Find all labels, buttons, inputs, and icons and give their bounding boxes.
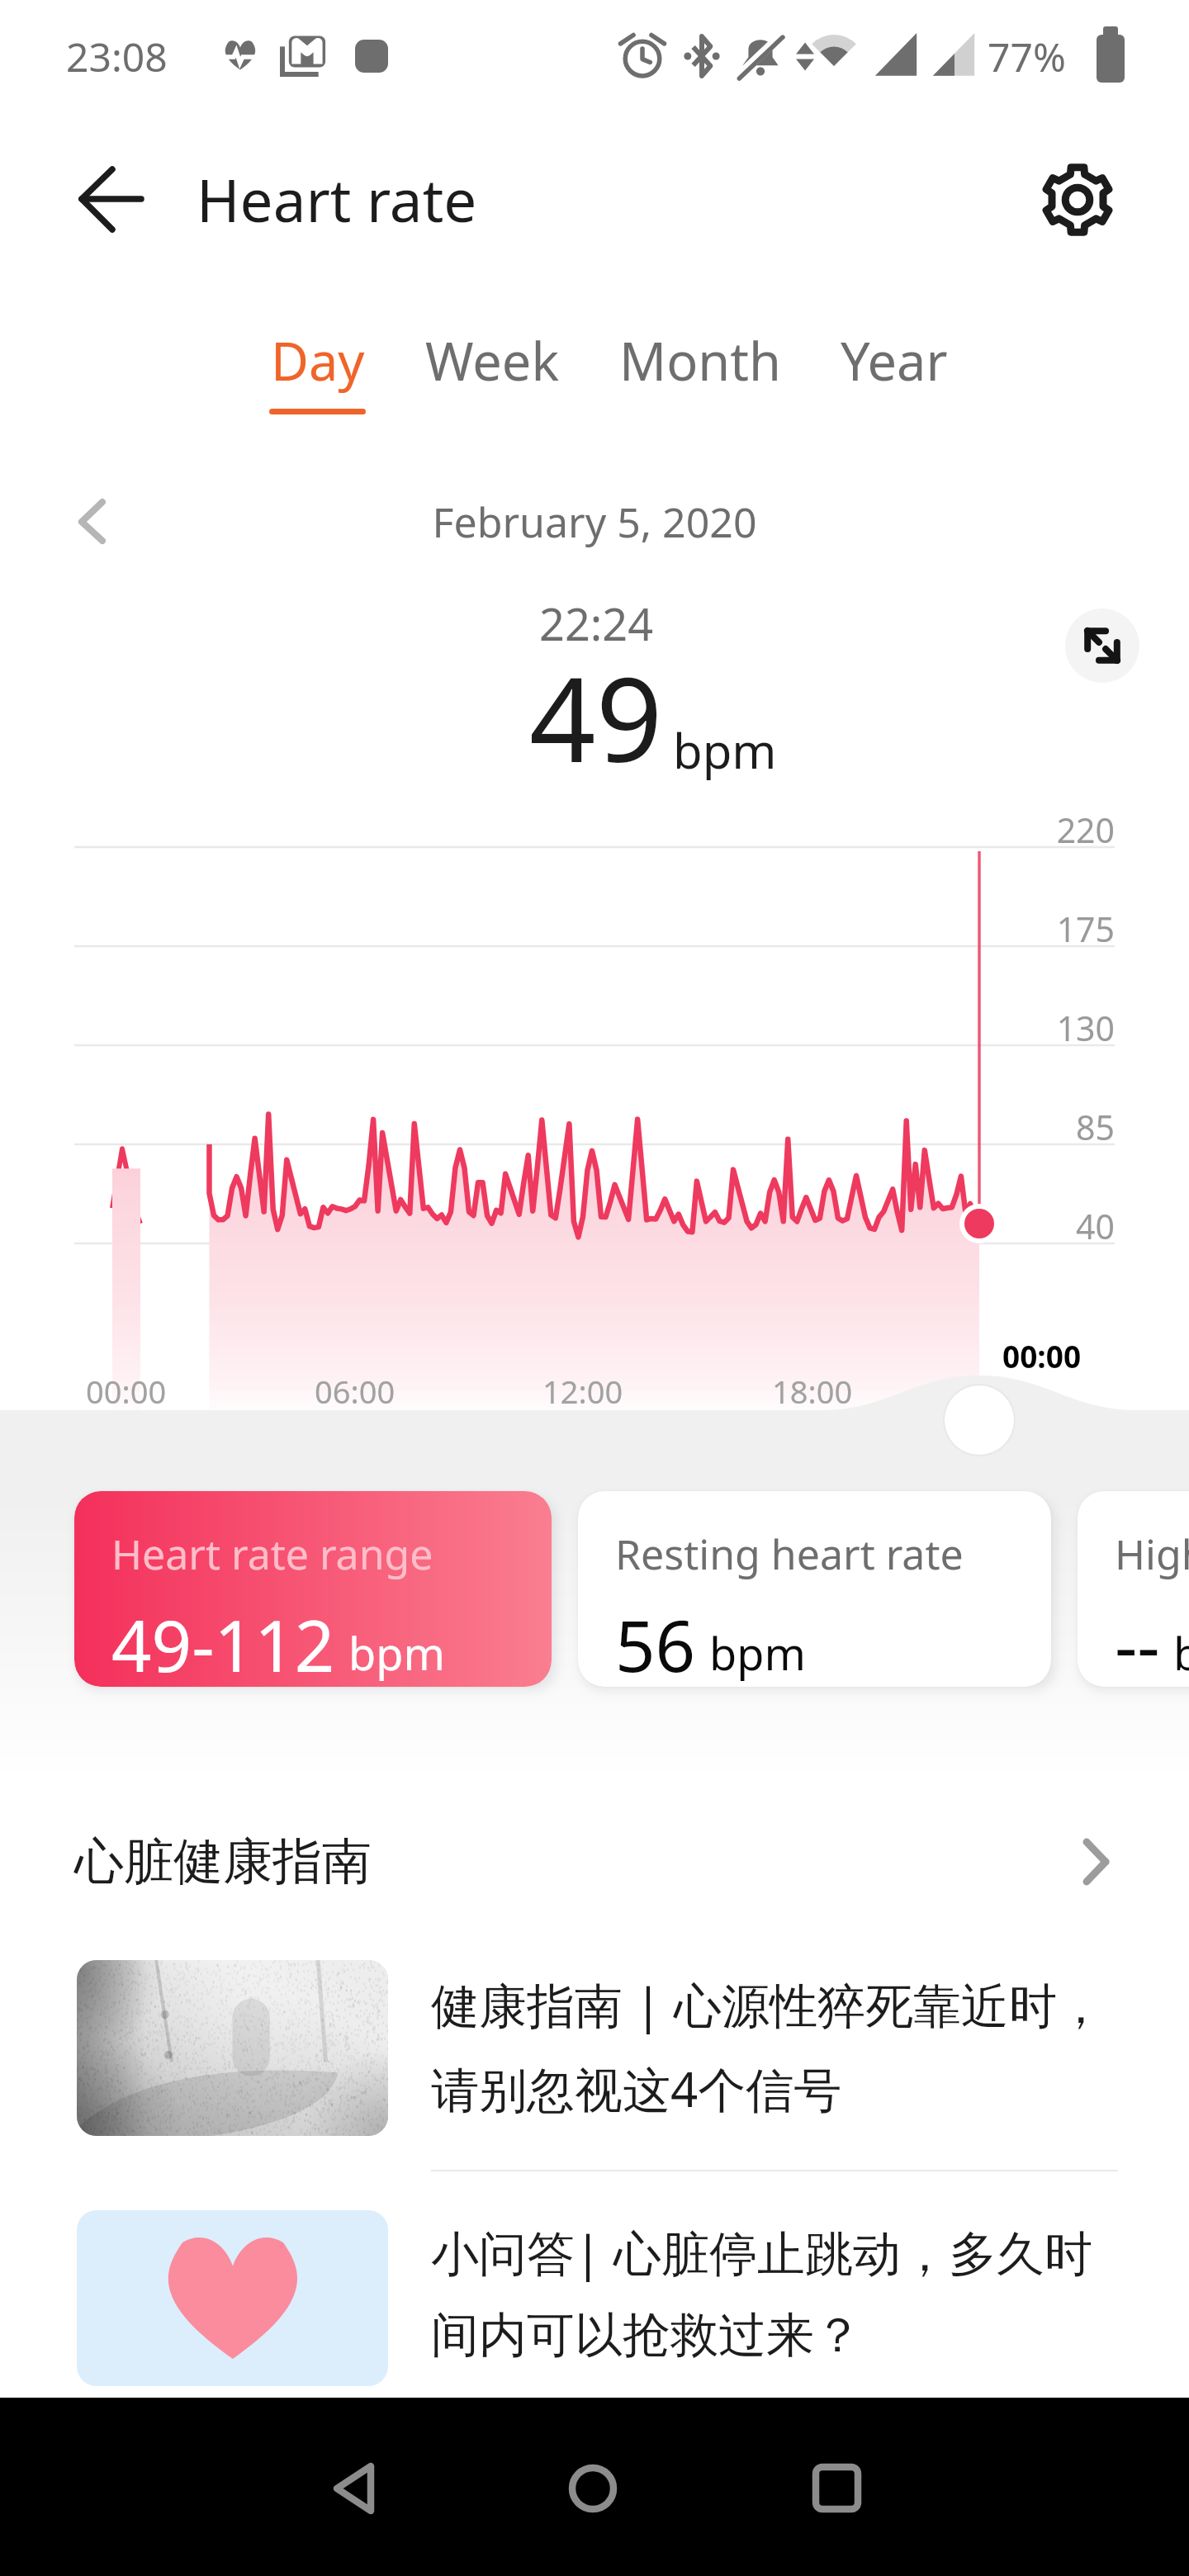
staticText: 49-112 — [111, 1597, 335, 1687]
staticText: 22:24 — [539, 593, 654, 654]
staticText: Heart rate range — [111, 1526, 433, 1582]
button[interactable]: Week — [396, 325, 590, 414]
staticText: February 5, 2020 — [0, 494, 1189, 550]
staticText: Year — [841, 325, 948, 396]
button[interactable]: 健康指南 | 心源性猝死靠近时，请别忽视这4个信号 — [0, 1924, 1189, 2167]
staticText: 56 — [615, 1597, 696, 1687]
staticText: Highest heart ra — [1115, 1526, 1189, 1582]
staticText: 40 — [950, 1203, 1115, 1249]
button[interactable]: Expand chart — [1065, 608, 1139, 683]
button[interactable]: Day — [239, 325, 396, 414]
staticText: 49 — [529, 637, 663, 796]
button[interactable]: Highest heart ra — [1078, 1491, 1189, 1687]
button[interactable]: Back — [64, 150, 167, 253]
staticText: 85 — [950, 1104, 1115, 1150]
staticText: bpm — [348, 1622, 445, 1683]
staticText: 心脏健康指南 — [74, 1830, 372, 1893]
button[interactable]: 小问答| 心脏停止跳动，多久时间内可以抢救过来？ — [0, 2173, 1189, 2411]
button[interactable]: Year — [811, 325, 978, 414]
staticText: 健康指南 | 心源性猝死靠近时，请别忽视这4个信号 — [431, 1972, 1125, 2121]
button[interactable]: Resting heart rate — [578, 1491, 1051, 1687]
staticText: 00:00 — [86, 1370, 167, 1413]
staticText: Month — [619, 325, 781, 396]
staticText: 130 — [950, 1005, 1115, 1051]
button[interactable]: Settings — [1026, 149, 1129, 251]
button[interactable]: 心脏健康指南 — [0, 1808, 1189, 1915]
staticText: 12:00 — [542, 1370, 623, 1413]
staticText: 小问答| 心脏停止跳动，多久时间内可以抢救过来？ — [431, 2219, 1125, 2365]
staticText: Week — [425, 325, 560, 396]
staticText: bpm — [673, 717, 777, 783]
button[interactable]: Previous day — [51, 475, 134, 557]
staticText: 06:00 — [315, 1370, 396, 1413]
staticText: 220 — [950, 807, 1115, 853]
button[interactable]: Month — [590, 325, 811, 414]
staticText: 175 — [950, 906, 1115, 952]
staticText: bpm — [1173, 1622, 1189, 1683]
staticText: Heart rate — [197, 159, 477, 239]
staticText: Resting heart rate — [615, 1526, 964, 1582]
staticText: 00:00 — [1002, 1335, 1082, 1376]
staticText: 77% — [988, 30, 1066, 83]
staticText: 23:08 — [66, 30, 168, 83]
staticText: -- — [1115, 1597, 1160, 1687]
staticText: bpm — [709, 1622, 806, 1683]
staticText: Day — [271, 325, 365, 396]
staticText: 18:00 — [772, 1370, 853, 1413]
button[interactable]: Heart rate range — [74, 1491, 552, 1687]
